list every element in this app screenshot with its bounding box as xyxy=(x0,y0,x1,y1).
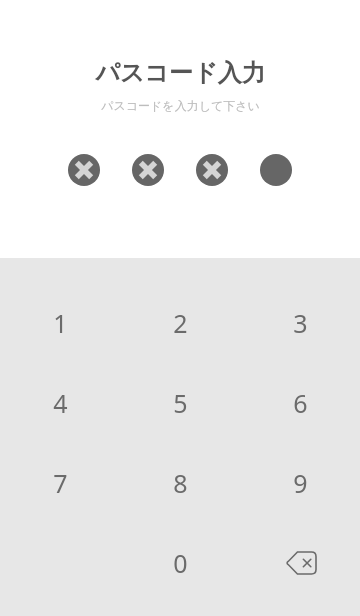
staticText: 9 xyxy=(293,466,308,500)
button[interactable]: 7 xyxy=(0,443,120,523)
button[interactable]: 1 xyxy=(0,283,120,363)
staticText: 6 xyxy=(293,386,308,420)
button[interactable]: 5 xyxy=(120,363,240,443)
button[interactable]: 9 xyxy=(240,443,360,523)
button[interactable]: Backspace xyxy=(240,523,360,603)
staticText: 5 xyxy=(173,386,188,420)
button[interactable]: 3 xyxy=(240,283,360,363)
staticText: 7 xyxy=(53,466,68,500)
staticText: 8 xyxy=(173,466,188,500)
button[interactable]: 8 xyxy=(120,443,240,523)
button[interactable]: 2 xyxy=(120,283,240,363)
button[interactable]: 0 xyxy=(120,523,240,603)
button[interactable]: 6 xyxy=(240,363,360,443)
staticText: 2 xyxy=(173,306,188,340)
staticText: 0 xyxy=(173,546,188,580)
staticText: パスコード入力 xyxy=(95,58,266,88)
staticText: 1 xyxy=(53,306,68,340)
staticText: 3 xyxy=(293,306,308,340)
staticText: 4 xyxy=(53,386,68,420)
staticText: パスコードを入力して下さい xyxy=(101,98,260,113)
button[interactable]: 4 xyxy=(0,363,120,443)
